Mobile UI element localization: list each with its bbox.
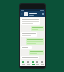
button[interactable]: Camera bbox=[31, 61, 35, 65]
button[interactable] bbox=[21, 32, 37, 37]
button[interactable] bbox=[21, 18, 40, 25]
button[interactable]: Chats bbox=[21, 61, 25, 65]
button[interactable] bbox=[21, 46, 32, 49]
button[interactable] bbox=[29, 50, 44, 55]
button[interactable] bbox=[31, 26, 44, 31]
button[interactable]: Back bbox=[21, 13, 23, 15]
button[interactable] bbox=[26, 38, 44, 45]
button[interactable]: Calls bbox=[35, 61, 39, 65]
button[interactable] bbox=[21, 56, 39, 59]
button[interactable]: Back bbox=[20, 11, 45, 17]
button[interactable]: Settings bbox=[40, 61, 44, 65]
button[interactable]: Status bbox=[26, 61, 30, 65]
